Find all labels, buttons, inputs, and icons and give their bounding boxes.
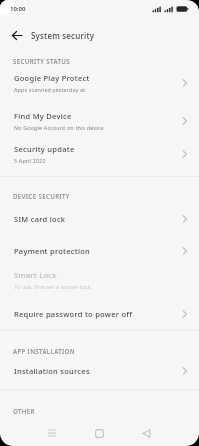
staticText: Require password to power off [14, 309, 133, 319]
staticText: Security update [14, 144, 75, 154]
staticText: SECURITY STATUS [13, 57, 70, 65]
staticText: Google Play Protect [14, 73, 90, 83]
button[interactable]: SIM card lock [0, 205, 199, 233]
button[interactable]: Require password to power off [0, 300, 199, 328]
button[interactable] [38, 421, 66, 445]
staticText: 5 April 2022 [14, 157, 46, 164]
button[interactable]: Payment protection [0, 237, 199, 265]
staticText: System security [31, 30, 95, 41]
staticText: OTHER [13, 407, 35, 415]
staticText: Smart Lock [14, 270, 57, 280]
button[interactable]: Installation sources [0, 357, 199, 385]
staticText: SIM card lock [14, 214, 66, 224]
staticText: No Google Account on this device [14, 124, 104, 131]
button[interactable] [85, 421, 113, 445]
staticText: 10:00 [10, 5, 26, 13]
staticText: DEVICE SECURITY [13, 192, 70, 200]
staticText: Installation sources [14, 366, 90, 376]
staticText: Payment protection [14, 246, 91, 256]
button[interactable] [132, 421, 160, 445]
button[interactable]: Find My Device [0, 102, 199, 139]
staticText: Find My Device [14, 111, 72, 121]
button[interactable]: Google Play Protect [0, 66, 199, 100]
button[interactable] [5, 23, 29, 47]
button[interactable]: Security update [0, 136, 199, 171]
button[interactable]: Smart Lock [0, 261, 199, 298]
staticText: Apps scanned yesterday at [14, 86, 86, 93]
staticText: To use, first set a screen lock [14, 283, 91, 290]
staticText: APP INSTALLATION [13, 347, 75, 355]
